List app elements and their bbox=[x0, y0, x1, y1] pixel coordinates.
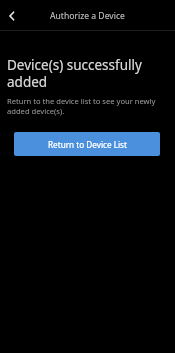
button[interactable]: Back bbox=[0, 4, 24, 28]
staticText: Return to the device list to see your ne… bbox=[7, 96, 167, 116]
staticText: Authorize a Device bbox=[50, 10, 125, 22]
staticText: Device(s) successfully added bbox=[7, 56, 169, 91]
staticText: Return to Device List bbox=[48, 139, 127, 150]
button[interactable]: Return to Device List bbox=[14, 132, 160, 156]
